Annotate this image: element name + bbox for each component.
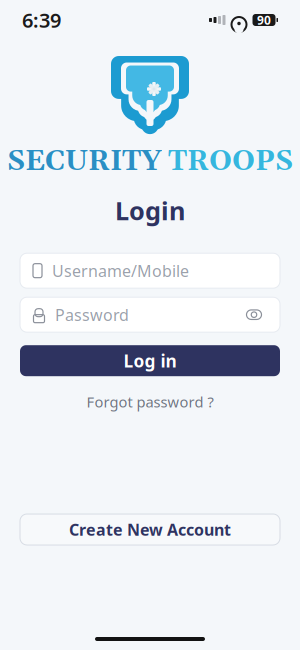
button[interactable]: Log in xyxy=(20,345,280,376)
button[interactable]: Show password xyxy=(241,302,267,328)
staticText: Password xyxy=(55,304,129,325)
staticText: Log in xyxy=(123,349,176,372)
staticText: SECURITY xyxy=(7,144,161,179)
staticText: TROOPS xyxy=(168,144,293,179)
button[interactable]: Create New Account xyxy=(20,514,280,545)
staticText: Login xyxy=(115,193,185,227)
staticText: Username/Mobile xyxy=(52,260,189,281)
staticText: Create New Account xyxy=(69,519,231,540)
button[interactable]: Forgot password ? xyxy=(76,388,223,416)
staticText: Forgot password ? xyxy=(86,392,213,412)
staticText: 90 xyxy=(257,12,271,28)
staticText: 6:39 xyxy=(22,7,61,33)
staticText xyxy=(161,144,168,179)
